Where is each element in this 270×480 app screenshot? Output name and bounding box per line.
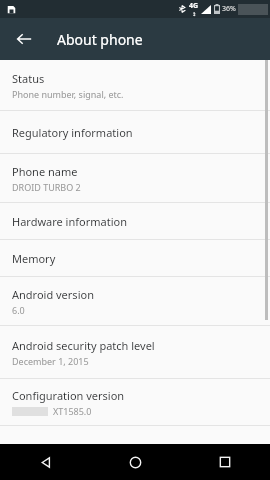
staticText: Android security patch level (12, 338, 155, 353)
staticText: Android version (12, 287, 94, 302)
staticText: ↕ (192, 11, 197, 17)
staticText: Regulatory information (12, 125, 133, 140)
staticText: 4G (189, 1, 199, 11)
staticText: DROID TURBO 2 (12, 181, 81, 193)
button[interactable]: Home (90, 444, 180, 480)
staticText: Status (12, 71, 45, 86)
staticText: Memory (12, 251, 56, 266)
button[interactable]: Android security patch level (0, 326, 270, 378)
staticText: About phone (57, 30, 143, 49)
button[interactable]: Phone name (0, 154, 270, 202)
staticText: 36% (222, 4, 236, 14)
staticText: Phone number, signal, etc. (12, 88, 124, 100)
staticText: December 1, 2015 (12, 355, 89, 367)
button[interactable]: Hardware information (0, 203, 270, 239)
button[interactable]: Navigate up (10, 25, 38, 53)
staticText: 6.0 (12, 304, 25, 316)
button[interactable]: Regulatory information (0, 111, 270, 153)
staticText: Phone name (12, 164, 78, 179)
staticText: Hardware information (12, 214, 127, 229)
button[interactable]: Android version (0, 277, 270, 325)
button[interactable]: Configuration version (0, 379, 270, 425)
button[interactable]: Back (0, 444, 90, 480)
button[interactable]: Status (0, 60, 270, 110)
button[interactable]: Memory (0, 240, 270, 276)
staticText: Configuration version (12, 388, 125, 403)
staticText: XT1585.0 (53, 405, 92, 417)
button[interactable]: Recent apps (180, 444, 270, 480)
